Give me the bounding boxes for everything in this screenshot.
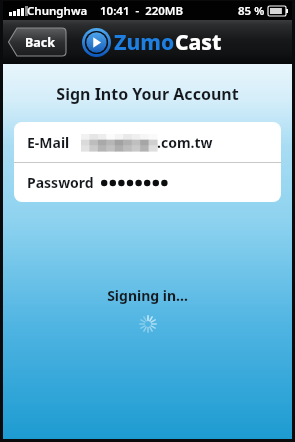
staticText: Chunghwa xyxy=(27,3,88,19)
staticText: Sign Into Your Account xyxy=(3,83,292,105)
staticText: Signing in... xyxy=(3,286,292,305)
staticText: Back xyxy=(25,34,56,51)
button[interactable]: Back xyxy=(8,28,66,56)
staticText: .com.tw xyxy=(157,133,213,152)
staticText: 10:41 - 220MB xyxy=(100,3,184,19)
staticText: Zumo xyxy=(114,28,175,57)
staticText: Cast xyxy=(175,28,222,57)
staticText: Password xyxy=(27,173,94,192)
button[interactable]: E-Mail xyxy=(14,122,281,162)
staticText: E-Mail xyxy=(27,133,70,152)
button[interactable]: Password xyxy=(14,163,281,202)
staticText: 85 % xyxy=(238,3,265,19)
